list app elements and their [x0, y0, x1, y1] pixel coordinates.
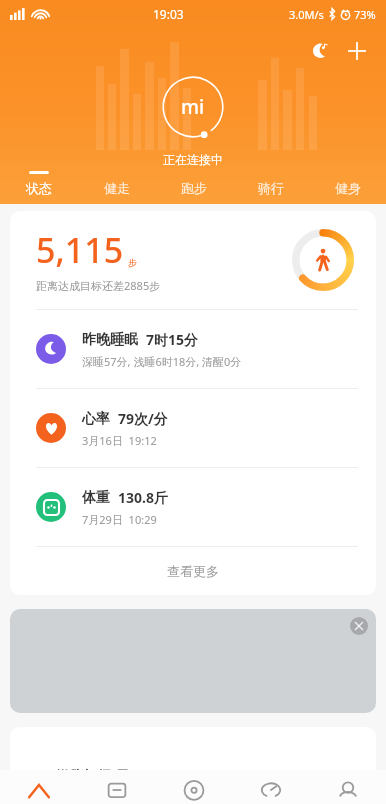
staticText: 步 — [128, 257, 137, 268]
button[interactable]: 跑步 — [155, 171, 232, 196]
button[interactable]: 查看更多 — [10, 547, 376, 595]
button[interactable]: Add device — [342, 36, 372, 66]
button[interactable]: HIIT燃脂初级·男 — [10, 727, 376, 787]
button[interactable]: 状态 — [0, 171, 78, 196]
staticText: 昨晚睡眠 — [82, 331, 138, 349]
button[interactable]: 昨晚睡眠 — [10, 310, 376, 388]
staticText: mi — [181, 94, 205, 120]
staticText: 深睡57分, 浅睡6时18分, 清醒0分 — [82, 354, 242, 369]
staticText: 79次/分 — [118, 409, 168, 428]
button[interactable]: Workout — [78, 770, 155, 804]
staticText: 心率 — [82, 410, 110, 428]
button[interactable]: Home — [0, 770, 78, 804]
button[interactable]: Sleep mode — [304, 36, 334, 66]
staticText: HIIT燃脂初级·男 — [26, 766, 130, 785]
button[interactable]: 5,115 — [10, 211, 376, 309]
button[interactable]: Close ad — [10, 609, 376, 713]
staticText: 健身 — [335, 180, 361, 196]
staticText: 130.8斤 — [118, 488, 168, 507]
button[interactable]: 骑行 — [232, 171, 309, 196]
button[interactable]: 心率 — [10, 389, 376, 467]
button[interactable]: Profile — [309, 770, 386, 804]
staticText: 状态 — [26, 180, 52, 196]
staticText: 体重 — [82, 489, 110, 507]
button[interactable]: Stats — [232, 770, 309, 804]
staticText: 73% — [354, 7, 376, 22]
button[interactable]: 健走 — [78, 171, 155, 196]
staticText: 7月29日 10:29 — [82, 512, 157, 527]
staticText: 3月16日 19:12 — [82, 433, 157, 448]
staticText: 查看更多 — [167, 563, 219, 579]
button[interactable]: Discover — [155, 770, 232, 804]
button[interactable]: 体重 — [10, 468, 376, 546]
staticText: 骑行 — [258, 180, 284, 196]
staticText: 19:03 — [153, 6, 184, 22]
button[interactable]: Close ad — [350, 617, 368, 635]
staticText: 距离达成目标还差2885步 — [36, 278, 161, 293]
staticText: 7时15分 — [146, 330, 199, 349]
staticText: 正在连接中 — [163, 152, 223, 167]
staticText: 5,115 — [36, 227, 124, 273]
staticText: 跑步 — [181, 180, 207, 196]
staticText: 3.0M/s — [289, 7, 324, 22]
button[interactable]: 健身 — [309, 171, 386, 196]
staticText: 健走 — [104, 180, 130, 196]
